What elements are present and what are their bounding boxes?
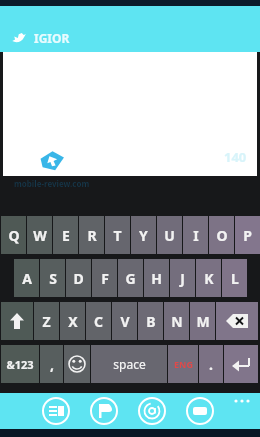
- button[interactable]: V: [112, 302, 137, 340]
- staticText: H: [151, 269, 162, 288]
- staticText: I: [193, 226, 199, 245]
- button[interactable]: ,: [40, 345, 63, 383]
- staticText: Q: [8, 226, 20, 245]
- staticText: ,: [50, 355, 54, 374]
- staticText: G: [125, 269, 136, 288]
- button[interactable]: Q: [1, 216, 26, 254]
- button[interactable]: I: [183, 216, 208, 254]
- staticText: M: [196, 312, 210, 331]
- button[interactable]: B: [138, 302, 163, 340]
- button[interactable]: 140: [3, 52, 257, 176]
- button[interactable]: D: [66, 259, 91, 297]
- button[interactable]: space: [91, 345, 167, 383]
- button[interactable]: F: [92, 259, 117, 297]
- button[interactable]: Backspace: [216, 302, 258, 340]
- button[interactable]: Enter: [224, 345, 258, 383]
- button[interactable]: .: [199, 345, 223, 383]
- staticText: X: [68, 312, 78, 331]
- button[interactable]: Mentions: [137, 396, 167, 426]
- button[interactable]: Y: [131, 216, 156, 254]
- staticText: ENG: [174, 358, 193, 370]
- button[interactable]: M: [190, 302, 215, 340]
- staticText: Z: [42, 312, 51, 331]
- button[interactable]: Profile: [89, 396, 119, 426]
- button[interactable]: P: [235, 216, 260, 254]
- staticText: V: [120, 312, 130, 331]
- button[interactable]: Emoji: [64, 345, 90, 383]
- staticText: 140: [224, 148, 247, 166]
- staticText: K: [204, 269, 214, 288]
- staticText: P: [243, 226, 252, 245]
- button[interactable]: T: [105, 216, 130, 254]
- button[interactable]: J: [170, 259, 195, 297]
- staticText: N: [171, 312, 183, 331]
- button[interactable]: Messages: [185, 396, 215, 426]
- staticText: .: [209, 355, 213, 374]
- staticText: B: [146, 312, 156, 331]
- button[interactable]: More options: [230, 395, 254, 407]
- staticText: R: [87, 226, 97, 245]
- button[interactable]: X: [60, 302, 85, 340]
- staticText: E: [62, 226, 70, 245]
- button[interactable]: R: [79, 216, 104, 254]
- staticText: IGIOR: [34, 30, 70, 46]
- button[interactable]: L: [222, 259, 247, 297]
- staticText: C: [94, 312, 103, 331]
- staticText: U: [164, 226, 175, 245]
- button[interactable]: Z: [34, 302, 59, 340]
- button[interactable]: Timeline: [41, 396, 71, 426]
- button[interactable]: H: [144, 259, 169, 297]
- button[interactable]: N: [164, 302, 189, 340]
- staticText: F: [101, 269, 109, 288]
- button[interactable]: ENG: [168, 345, 198, 383]
- button[interactable]: S: [40, 259, 65, 297]
- staticText: T: [113, 226, 122, 245]
- staticText: S: [49, 269, 57, 288]
- staticText: space: [113, 356, 146, 372]
- staticText: D: [73, 269, 84, 288]
- staticText: &123: [6, 357, 34, 372]
- staticText: Y: [139, 226, 148, 245]
- button[interactable]: &123: [1, 345, 39, 383]
- button[interactable]: O: [209, 216, 234, 254]
- button[interactable]: G: [118, 259, 143, 297]
- button[interactable]: A: [14, 259, 39, 297]
- staticText: mobile-review.com: [14, 178, 90, 189]
- staticText: J: [180, 269, 185, 288]
- button[interactable]: C: [86, 302, 111, 340]
- button[interactable]: U: [157, 216, 182, 254]
- button[interactable]: K: [196, 259, 221, 297]
- staticText: W: [33, 226, 47, 245]
- button[interactable]: Shift: [1, 302, 33, 340]
- staticText: A: [22, 269, 32, 288]
- staticText: L: [231, 269, 239, 288]
- button[interactable]: W: [27, 216, 52, 254]
- staticText: O: [216, 226, 228, 245]
- button[interactable]: E: [53, 216, 78, 254]
